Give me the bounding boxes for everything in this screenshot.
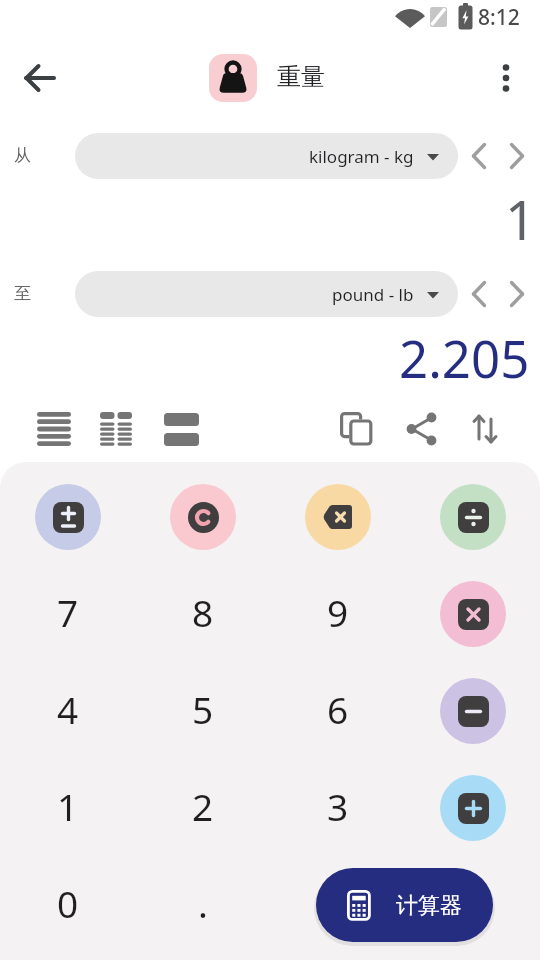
staticText: 至 bbox=[14, 283, 31, 304]
button[interactable] bbox=[461, 405, 509, 453]
button[interactable]: 2 bbox=[163, 766, 243, 846]
button[interactable] bbox=[170, 484, 236, 550]
button[interactable]: pound - lb bbox=[75, 271, 458, 317]
button[interactable] bbox=[488, 58, 524, 98]
button[interactable] bbox=[92, 405, 140, 453]
button[interactable] bbox=[440, 775, 506, 841]
staticText: . bbox=[198, 878, 208, 928]
staticText: kilogram - kg bbox=[309, 145, 414, 168]
button[interactable]: 1 bbox=[28, 766, 108, 846]
staticText: pound - lb bbox=[332, 283, 414, 306]
button[interactable]: 6 bbox=[298, 669, 378, 749]
button[interactable] bbox=[440, 678, 506, 744]
button[interactable]: 7 bbox=[28, 572, 108, 652]
button[interactable] bbox=[440, 581, 506, 647]
staticText: 1 bbox=[57, 781, 79, 831]
button[interactable] bbox=[157, 405, 205, 453]
staticText: 8 bbox=[192, 587, 214, 637]
button[interactable]: 9 bbox=[298, 572, 378, 652]
button[interactable] bbox=[30, 405, 78, 453]
button[interactable]: kilogram - kg bbox=[75, 133, 458, 179]
button[interactable] bbox=[500, 269, 534, 319]
staticText: 1 bbox=[505, 182, 536, 256]
button[interactable] bbox=[18, 56, 62, 100]
staticText: 6 bbox=[327, 684, 349, 734]
button[interactable]: 3 bbox=[298, 766, 378, 846]
button[interactable] bbox=[305, 484, 371, 550]
button[interactable]: . bbox=[163, 863, 243, 943]
button[interactable] bbox=[500, 131, 534, 181]
staticText: 2 bbox=[192, 781, 214, 831]
button[interactable]: 8 bbox=[163, 572, 243, 652]
staticText: 8:12 bbox=[478, 3, 520, 32]
button[interactable]: 4 bbox=[28, 669, 108, 749]
staticText: 9 bbox=[327, 587, 349, 637]
button[interactable] bbox=[333, 405, 381, 453]
button[interactable] bbox=[462, 269, 496, 319]
button[interactable]: 计算器 bbox=[316, 868, 493, 942]
staticText: 5 bbox=[192, 684, 214, 734]
staticText: 从 bbox=[14, 145, 31, 166]
staticText: 7 bbox=[57, 587, 79, 637]
staticText: 4 bbox=[57, 684, 79, 734]
button[interactable]: 0 bbox=[28, 863, 108, 943]
staticText: 3 bbox=[327, 781, 349, 831]
staticText: 重量 bbox=[277, 62, 325, 92]
button[interactable] bbox=[35, 484, 101, 550]
button[interactable] bbox=[462, 131, 496, 181]
staticText: 2.205 bbox=[399, 323, 530, 392]
button[interactable]: 5 bbox=[163, 669, 243, 749]
button[interactable] bbox=[397, 405, 445, 453]
staticText: 计算器 bbox=[396, 892, 462, 920]
staticText: 0 bbox=[57, 878, 79, 928]
button[interactable] bbox=[440, 484, 506, 550]
